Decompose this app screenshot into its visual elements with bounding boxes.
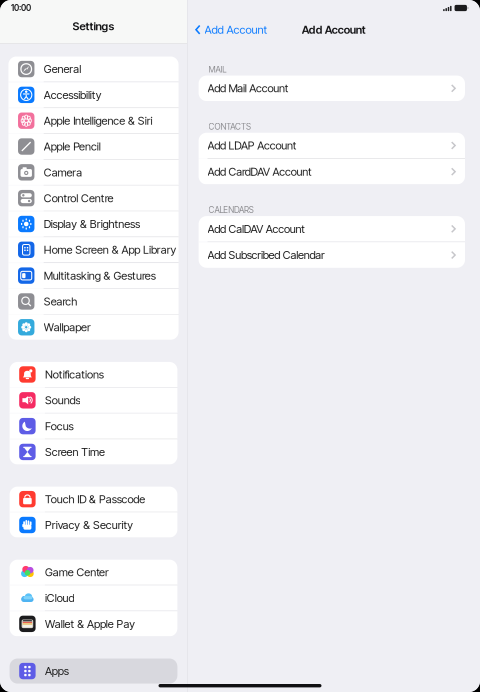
staticText: Add Account (302, 23, 366, 36)
staticText: Settings (72, 19, 114, 33)
button[interactable]: Apple Intelligence & Siri (8, 108, 178, 133)
button[interactable]: Wallpaper (8, 315, 178, 340)
staticText: Add Mail Account (208, 82, 289, 95)
button[interactable]: Sounds (10, 388, 177, 413)
button[interactable]: Notifications (10, 362, 177, 387)
staticText: Screen Time (45, 445, 105, 459)
staticText: Camera (44, 166, 82, 179)
staticText: CALENDARS (209, 205, 254, 215)
button[interactable]: Home Screen & App Library (8, 237, 178, 262)
button[interactable]: Focus (10, 414, 177, 439)
staticText: Apple Pencil (44, 140, 101, 153)
staticText: Search (44, 295, 77, 308)
staticText: Multitasking & Gestures (44, 269, 156, 282)
button[interactable]: Accessibility (8, 82, 178, 107)
staticText: Add Subscribed Calendar (208, 248, 325, 262)
button[interactable]: Wallet & Apple Pay (10, 611, 177, 636)
button[interactable]: Screen Time (10, 439, 177, 464)
staticText: Accessibility (44, 88, 102, 102)
staticText: 10:00 (11, 3, 31, 13)
staticText: MAIL (209, 64, 226, 75)
button[interactable]: Add CalDAV Account (199, 216, 465, 242)
staticText: iCloud (45, 591, 74, 605)
staticText: Notifications (45, 368, 104, 381)
button[interactable]: Control Centre (8, 186, 178, 211)
staticText: Touch ID & Passcode (45, 492, 145, 506)
button[interactable]: Multitasking & Gestures (8, 263, 178, 288)
staticText: Apps (45, 664, 69, 678)
button[interactable]: iCloud (10, 585, 177, 611)
staticText: Home Screen & App Library (44, 243, 176, 257)
staticText: Add CalDAV Account (208, 222, 305, 236)
staticText: Focus (45, 419, 73, 433)
staticText: Add CardDAV Account (208, 165, 312, 178)
button[interactable]: Game Center (10, 560, 177, 585)
button[interactable]: Add Account (188, 18, 268, 41)
staticText: Add LDAP Account (208, 139, 297, 152)
button[interactable]: Apps (10, 658, 177, 684)
staticText: Display & Brightness (44, 217, 140, 231)
button[interactable]: Add Mail Account (199, 76, 465, 101)
staticText: Wallpaper (44, 320, 91, 334)
staticText: Control Centre (44, 191, 113, 205)
button[interactable]: General (8, 56, 178, 82)
button[interactable]: Add Subscribed Calendar (199, 242, 465, 268)
staticText: Privacy & Security (45, 518, 133, 532)
button[interactable]: Camera (8, 160, 178, 185)
staticText: Apple Intelligence & Siri (44, 114, 152, 127)
button[interactable]: Add LDAP Account (199, 133, 465, 158)
staticText: Sounds (45, 394, 80, 407)
staticText: Wallet & Apple Pay (45, 617, 135, 631)
button[interactable]: Display & Brightness (8, 211, 178, 236)
button[interactable]: Search (8, 289, 178, 314)
button[interactable]: Privacy & Security (10, 512, 177, 537)
staticText: CONTACTS (209, 122, 251, 132)
button[interactable]: Apple Pencil (8, 134, 178, 159)
button[interactable]: Touch ID & Passcode (10, 487, 177, 512)
staticText: Game Center (45, 565, 109, 579)
staticText: General (44, 62, 81, 76)
staticText: Add Account (205, 23, 268, 36)
button[interactable]: Add CardDAV Account (199, 159, 465, 184)
